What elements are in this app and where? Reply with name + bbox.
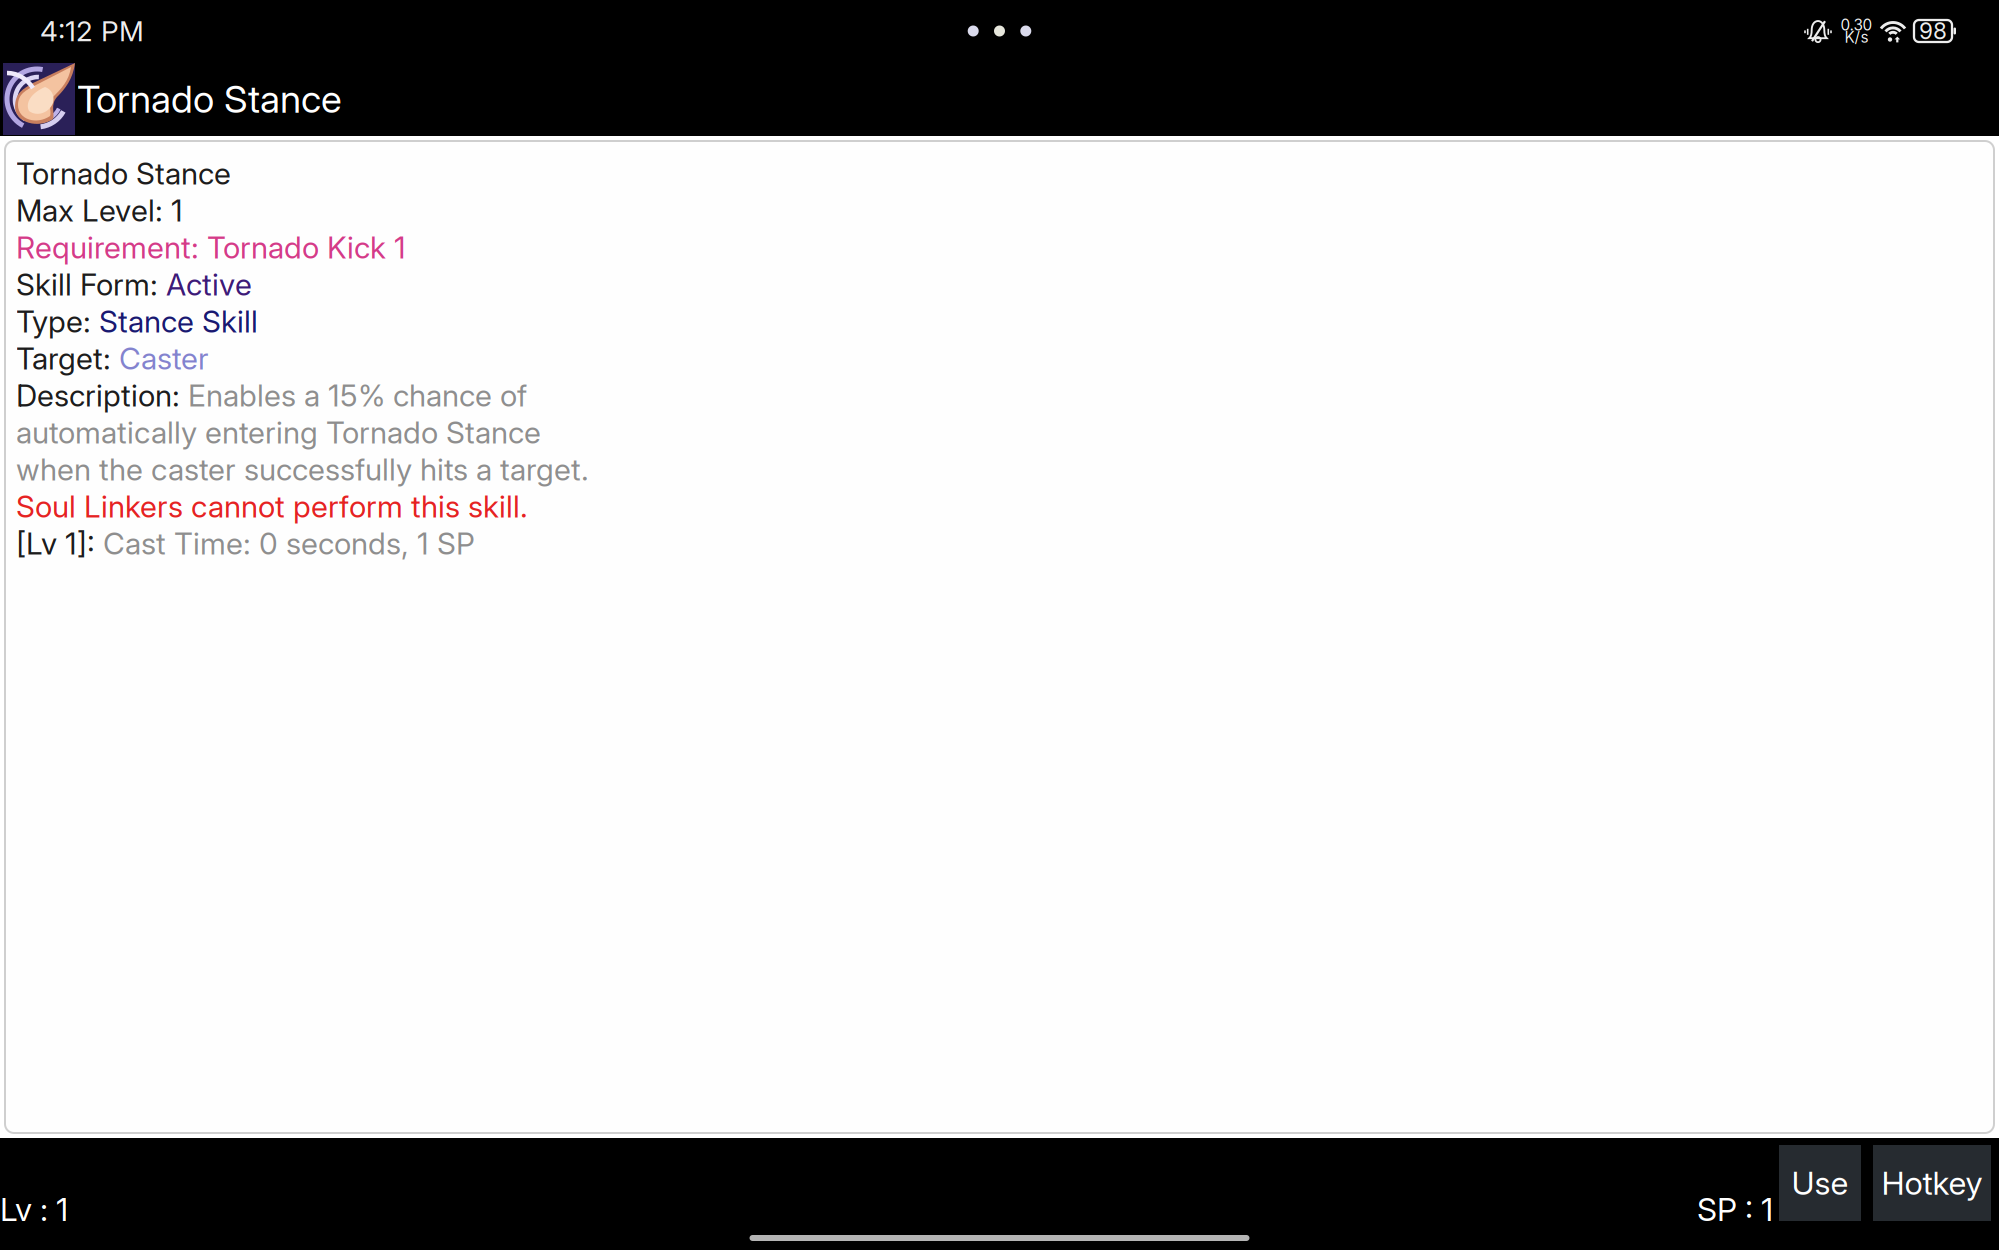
staticText: 4:12 PM xyxy=(40,14,144,48)
staticText: [Lv 1]: xyxy=(16,525,103,562)
staticText: Tornado Stance xyxy=(16,155,231,192)
staticText: Description: xyxy=(16,377,188,414)
staticText: Type: xyxy=(16,303,99,340)
staticText: Skill Form: xyxy=(16,266,166,303)
staticText: 1 xyxy=(171,192,183,229)
staticText: Hotkey xyxy=(1881,1164,1982,1202)
staticText: 0.30 xyxy=(1840,15,1872,34)
staticText: K/s xyxy=(1844,28,1868,46)
staticText: Lv : 1 xyxy=(0,1190,68,1229)
staticText: automatically entering Tornado Stance xyxy=(16,414,541,451)
button[interactable]: Hotkey xyxy=(1873,1145,1991,1221)
staticText: Caster xyxy=(119,340,209,377)
staticText: Cast Time: 0 seconds, 1 SP xyxy=(103,525,475,562)
staticText: Active xyxy=(166,266,252,303)
button[interactable]: Use xyxy=(1779,1145,1861,1221)
staticText: 98 xyxy=(1919,17,1947,45)
staticText: Tornado Stance xyxy=(77,76,342,122)
staticText: SP : 1 xyxy=(1697,1190,1773,1229)
staticText: Enables a 15% chance of xyxy=(188,377,527,414)
staticText: Soul Linkers cannot perform this skill. xyxy=(16,488,528,525)
staticText: Use xyxy=(1791,1164,1848,1202)
staticText: Stance Skill xyxy=(99,303,258,340)
staticText: Target: xyxy=(16,340,119,377)
staticText: when the caster successfully hits a targ… xyxy=(16,451,589,488)
staticText: Requirement: Tornado Kick 1 xyxy=(16,229,406,266)
staticText: Max Level: xyxy=(16,192,171,229)
